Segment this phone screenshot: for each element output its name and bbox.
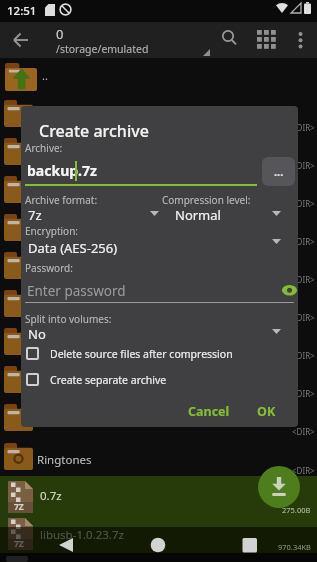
staticText: Password: (25, 261, 73, 275)
button[interactable] (290, 23, 312, 57)
button[interactable]: <DIR> (0, 134, 317, 172)
button[interactable]: <DIR> (0, 96, 317, 134)
button[interactable] (252, 23, 282, 57)
button[interactable] (171, 204, 296, 224)
button[interactable] (50, 532, 82, 558)
staticText: 7z (28, 206, 42, 224)
staticText: Encryption: (25, 224, 79, 238)
staticText: Data (AES-256) (28, 239, 118, 257)
staticText: 7Z (14, 538, 24, 550)
button[interactable]: <DIR> (0, 324, 317, 362)
staticText: Create separate archive (50, 373, 167, 387)
staticText: Create archive (39, 120, 149, 142)
staticText: Cancel (188, 403, 230, 420)
button[interactable]: OK (246, 400, 286, 422)
staticText: Archive format: (25, 193, 98, 207)
staticText: <DIR> (292, 388, 315, 399)
button[interactable] (25, 323, 295, 343)
staticText: 970.34KB (278, 542, 311, 552)
button[interactable]: 7Z (0, 476, 317, 514)
staticText: Normal (175, 206, 221, 224)
staticText: Ringtones (37, 452, 92, 468)
staticText: <DIR> (292, 350, 315, 361)
button[interactable] (143, 532, 173, 558)
button[interactable]: .. (0, 58, 317, 96)
staticText: No (28, 325, 46, 343)
staticText: backup.7z (27, 161, 97, 180)
staticText: .. (42, 68, 48, 83)
staticText: <DIR> (292, 122, 315, 133)
staticText: <DIR> (292, 236, 315, 247)
staticText: libusb-1.0.23.7z (40, 527, 124, 543)
staticText: Enter password (27, 282, 126, 300)
button[interactable]: Ringtones (0, 438, 317, 476)
button[interactable]: Cancel (184, 400, 234, 422)
staticText: OK (257, 403, 276, 420)
staticText: 275.00B (282, 505, 311, 515)
button[interactable] (6, 24, 36, 56)
staticText: /storage/emulated (56, 42, 149, 56)
button[interactable]: Delete source files after compression (25, 345, 275, 363)
staticText: <DIR> (292, 274, 315, 285)
button[interactable]: <DIR> (0, 400, 317, 438)
staticText: 0.7z (40, 488, 62, 504)
staticText: 12:51 (7, 3, 37, 19)
button[interactable]: <DIR> (0, 286, 317, 324)
staticText: Archive: (25, 141, 63, 155)
button[interactable] (258, 466, 300, 508)
button[interactable]: 7Z (0, 514, 317, 553)
staticText: <DIR> (292, 198, 315, 209)
staticText: <DIR> (292, 426, 315, 437)
button[interactable]: <DIR> (0, 362, 317, 400)
button[interactable]: <DIR> (0, 172, 317, 210)
staticText: Compression level: (162, 193, 251, 207)
staticText: <DIR> (292, 312, 315, 323)
button[interactable] (25, 237, 295, 257)
staticText: Delete source files after compression (50, 347, 233, 361)
staticText: <DIR> (292, 160, 315, 171)
button[interactable] (216, 23, 242, 57)
button[interactable]: <DIR> (0, 210, 317, 248)
button[interactable] (25, 204, 160, 224)
staticText: 7Z (14, 501, 24, 513)
button[interactable]: Create separate archive (25, 371, 275, 389)
staticText: Split into volumes: (25, 312, 112, 326)
staticText: <DIR> (292, 465, 315, 476)
button[interactable]: <DIR> (0, 248, 317, 286)
staticText: ... (274, 164, 284, 179)
staticText: 0 (56, 25, 64, 43)
button[interactable]: ... (262, 157, 295, 186)
button[interactable] (235, 532, 265, 558)
